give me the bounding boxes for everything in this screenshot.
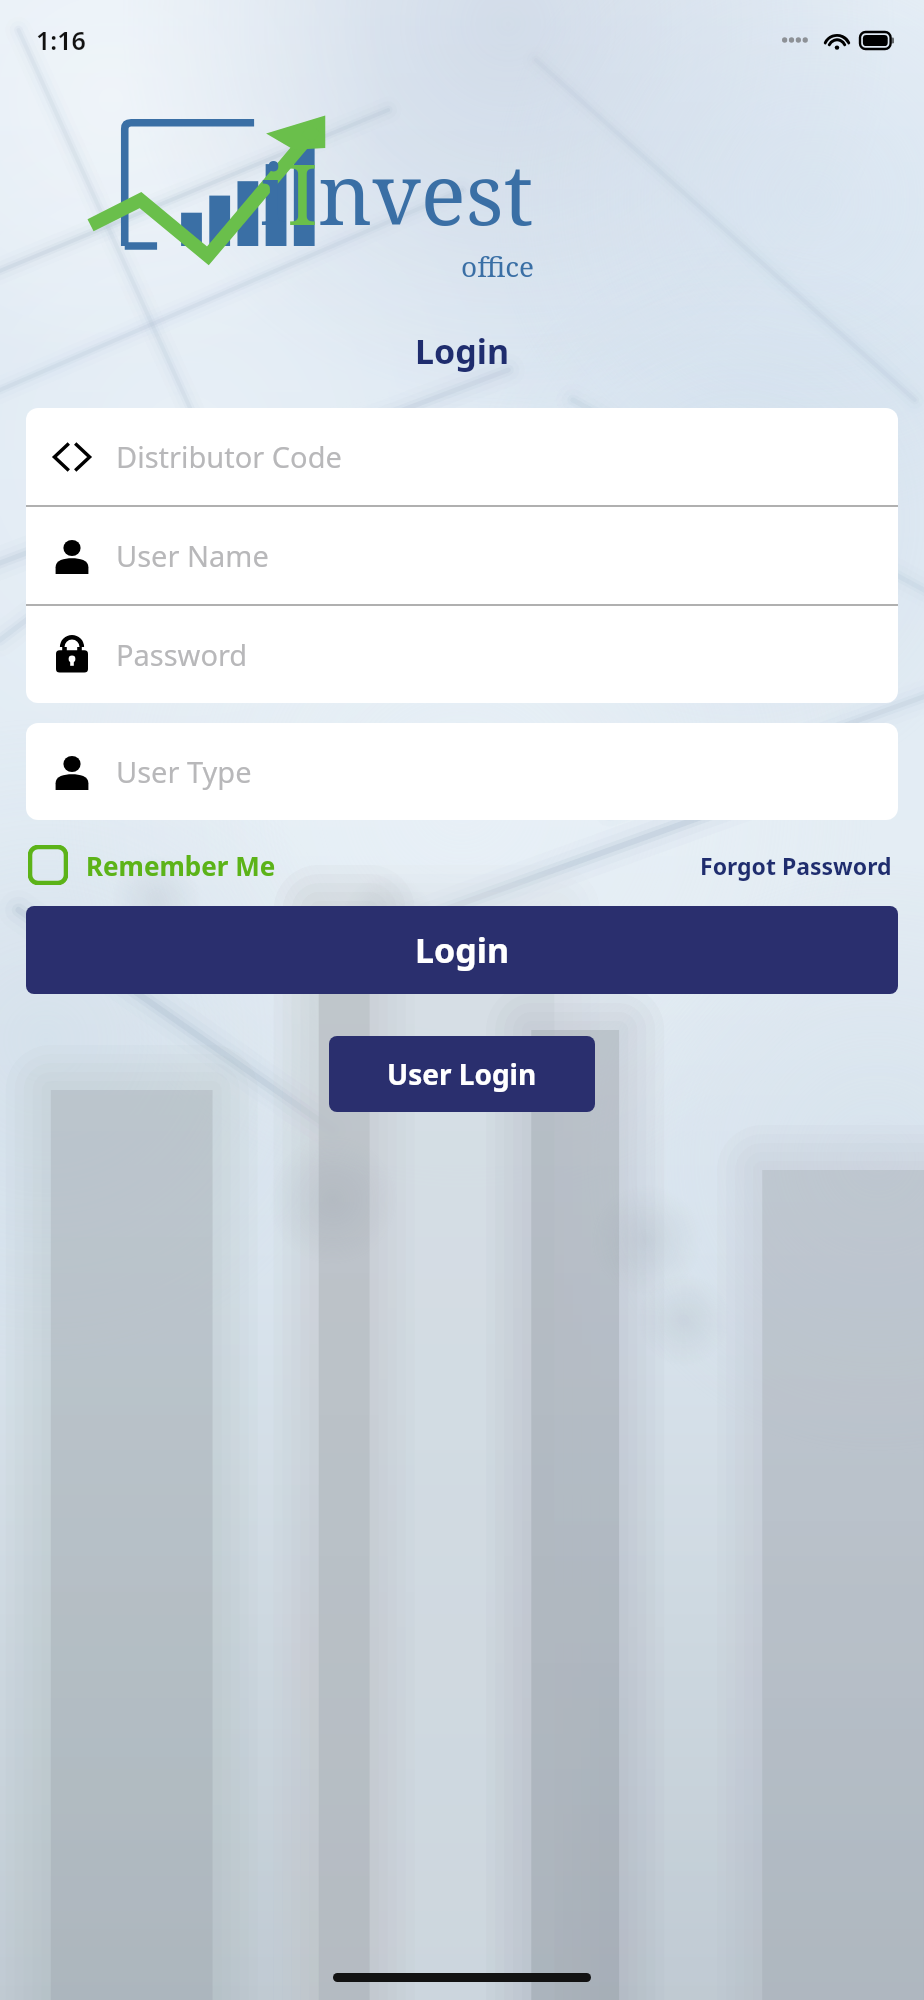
staticText: Forgot Password xyxy=(700,850,892,881)
staticText: I xyxy=(287,135,318,249)
button[interactable]: Login xyxy=(26,906,898,994)
button[interactable]: User xyxy=(26,507,898,604)
button[interactable]: Password xyxy=(26,606,898,703)
button[interactable]: Forgot Password xyxy=(696,846,896,885)
staticText: Login xyxy=(415,927,510,973)
button[interactable]: User xyxy=(26,723,898,820)
staticText: User Name xyxy=(116,536,269,575)
button[interactable]: User Login xyxy=(329,1036,595,1112)
staticText: i xyxy=(260,135,287,249)
button[interactable]: Remember Me xyxy=(28,845,284,885)
staticText: office xyxy=(461,247,534,285)
staticText: nvest xyxy=(318,135,534,249)
staticText: User Login xyxy=(387,1055,537,1093)
other: Distributor code xyxy=(52,437,92,477)
other: User xyxy=(52,536,92,576)
other: User xyxy=(52,752,92,792)
other: Password xyxy=(52,635,92,675)
staticText: Distributor Code xyxy=(116,437,342,476)
staticText: Password xyxy=(116,635,248,674)
staticText: Remember Me xyxy=(86,848,276,883)
staticText: Login xyxy=(0,328,924,374)
staticText: 1:16 xyxy=(36,23,86,57)
staticText: User Type xyxy=(116,752,252,791)
button[interactable]: Distributor code xyxy=(26,408,898,505)
